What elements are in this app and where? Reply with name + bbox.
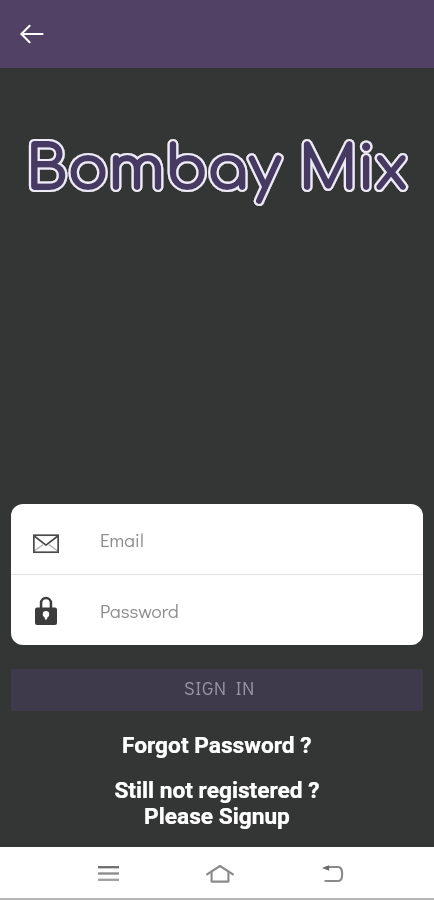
staticText: Bombay Mix [26,136,408,203]
staticText: Forgot Password ? [122,732,312,759]
button[interactable]: Recents [52,847,164,900]
staticText: SIGN IN [184,676,256,700]
button[interactable]: Back [8,10,56,58]
button[interactable]: Password [11,575,423,645]
button[interactable]: Forgot Password ? [0,732,434,759]
button[interactable]: SIGN IN [11,669,423,711]
button[interactable]: Back [276,847,388,900]
button[interactable]: Home [164,847,276,900]
button[interactable]: Email [11,504,423,574]
staticText: Email [100,527,144,552]
staticText: Still not registered ? Please Signup [114,777,320,829]
staticText: Bombay Mix [26,136,408,203]
button[interactable]: Still not registered ? Please Signup [0,777,434,829]
staticText: Password [100,598,179,623]
